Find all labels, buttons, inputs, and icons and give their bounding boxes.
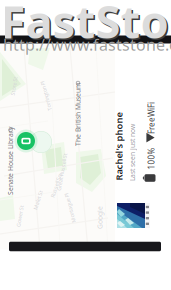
staticText: Malet St bbox=[28, 196, 48, 204]
staticText: Great Russell St bbox=[43, 168, 81, 176]
staticText: Rachel's phone bbox=[84, 139, 152, 152]
staticText: Russell Sq bbox=[44, 182, 68, 190]
staticText: Store St bbox=[4, 82, 23, 90]
staticText: http://www.faststone.org bbox=[3, 34, 171, 55]
staticText: Senate House Library bbox=[0, 160, 47, 168]
staticText: Google bbox=[89, 214, 112, 222]
staticText: Gower St bbox=[9, 212, 31, 220]
staticText: Torrington Pl bbox=[31, 92, 61, 100]
staticText: FastStone bbox=[0, 0, 171, 51]
staticText: The British Museum bbox=[49, 113, 112, 121]
staticText: FastStone bbox=[2, 0, 171, 53]
staticText: FreeWiFi bbox=[135, 113, 167, 123]
staticText: Last seen just now bbox=[101, 146, 158, 154]
staticText: Montague Pl bbox=[55, 204, 85, 212]
staticText: 100% bbox=[141, 154, 163, 164]
